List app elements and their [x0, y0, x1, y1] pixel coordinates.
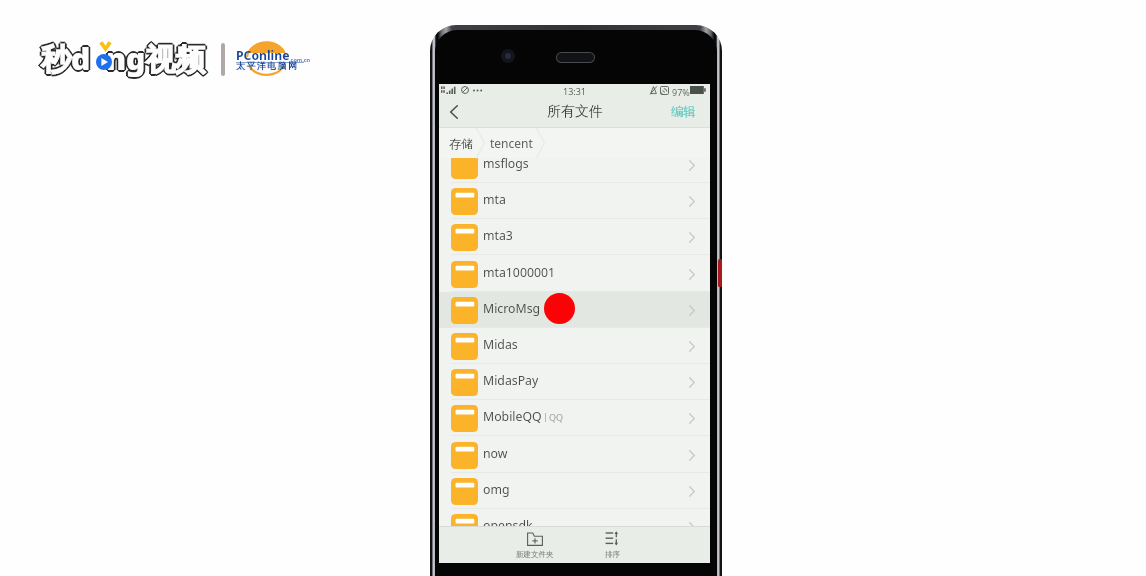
staticText: 秒d: [42, 37, 92, 78]
staticText: mta1000001: [483, 264, 556, 281]
staticText: mta: [483, 191, 506, 208]
staticText: msflogs: [483, 155, 529, 172]
staticText: now: [483, 445, 508, 462]
staticText: 秒d: [42, 39, 92, 80]
staticText: ng视频: [106, 40, 206, 81]
button[interactable]: Back: [439, 97, 469, 127]
staticText: PConline: [236, 47, 290, 64]
staticText: ng视频: [105, 39, 205, 80]
staticText: 秒d: [41, 38, 91, 79]
staticText: MobileQQ: [483, 408, 542, 425]
staticText: Midas: [483, 336, 518, 353]
staticText: mta3: [483, 227, 513, 244]
staticText: 所有文件: [547, 103, 603, 121]
staticText: tencent: [490, 135, 533, 151]
staticText: 编辑: [671, 104, 696, 120]
staticText: omg: [483, 481, 510, 498]
staticText: 秒d: [41, 36, 91, 77]
staticText: 新建文件夹: [516, 550, 554, 559]
staticText: 秒d: [39, 38, 89, 79]
staticText: ng视频: [107, 37, 207, 78]
staticText: 排序: [605, 550, 620, 559]
staticText: ng视频: [105, 37, 205, 78]
button[interactable]: tencent: [485, 128, 536, 158]
staticText: 秒d: [40, 37, 90, 78]
button[interactable]: mta: [439, 183, 710, 219]
button[interactable]: 编辑: [661, 97, 710, 127]
staticText: ng视频: [107, 39, 207, 80]
staticText: ng视频: [108, 38, 208, 79]
staticText: 秒d: [43, 38, 93, 79]
staticText: 秒d: [40, 39, 90, 80]
staticText: opensdk: [483, 517, 533, 527]
staticText: 13:31: [563, 85, 587, 97]
staticText: 存储: [449, 136, 473, 151]
staticText: MicroMsg: [483, 300, 541, 317]
staticText: 太平洋电脑网: [236, 60, 299, 71]
button[interactable]: mta1000001: [439, 256, 710, 292]
button[interactable]: MidasPay: [439, 364, 710, 400]
staticText: 97%: [672, 86, 690, 98]
staticText: ng视频: [104, 38, 204, 79]
button[interactable]: msflogs: [439, 147, 710, 183]
button[interactable]: omg: [439, 473, 710, 509]
button[interactable]: 排序: [581, 527, 643, 563]
button[interactable]: MicroMsg: [439, 292, 710, 328]
staticText: MidasPay: [483, 372, 539, 389]
button[interactable]: 新建文件夹: [504, 527, 566, 563]
staticText: ng视频: [106, 36, 206, 77]
staticText: .com.cn: [289, 56, 311, 63]
button[interactable]: Midas: [439, 328, 710, 364]
staticText: ng视频: [106, 38, 206, 79]
staticText: 秒d: [41, 40, 91, 81]
button[interactable]: MobileQQ: [439, 400, 710, 436]
button[interactable]: now: [439, 437, 710, 473]
button[interactable]: mta3: [439, 219, 710, 255]
button[interactable]: 存储: [439, 128, 476, 158]
staticText: QQ: [549, 411, 564, 423]
button[interactable]: opensdk: [439, 509, 710, 527]
